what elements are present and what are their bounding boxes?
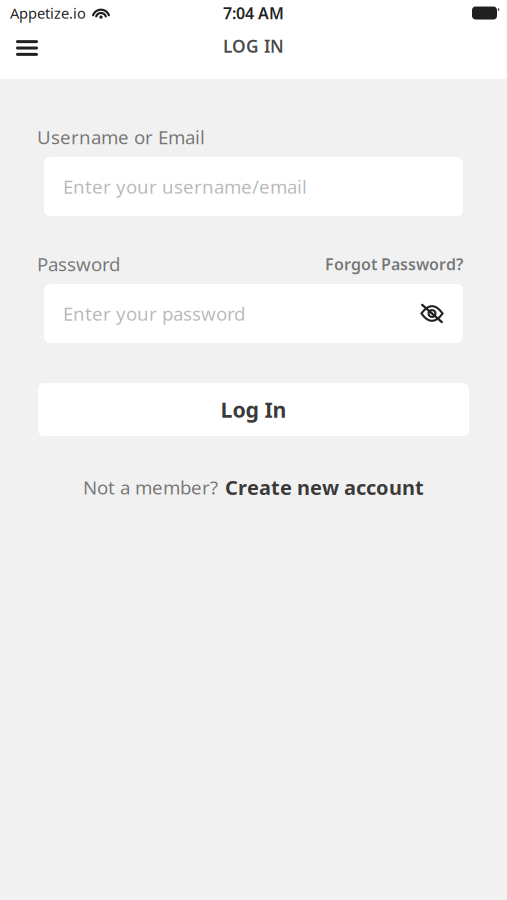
staticText: Enter your password xyxy=(63,301,245,326)
staticText: Password xyxy=(37,252,120,276)
button[interactable]: Not a member? xyxy=(83,474,424,501)
staticText: Forgot Password? xyxy=(325,253,463,275)
staticText: Create new account xyxy=(225,474,424,501)
staticText: LOG IN xyxy=(223,34,284,57)
staticText: Appetize.io xyxy=(10,3,86,23)
button[interactable]: Show password xyxy=(420,303,444,323)
staticText: Enter your username/email xyxy=(63,174,307,199)
button[interactable]: Forgot Password? xyxy=(325,253,463,275)
button[interactable]: Log In xyxy=(38,383,469,436)
staticText: Not a member? xyxy=(83,475,218,500)
button[interactable]: Menu xyxy=(5,26,49,70)
staticText: Username or Email xyxy=(37,125,205,149)
staticText: 7:04 AM xyxy=(223,2,284,24)
staticText: Log In xyxy=(220,395,286,424)
